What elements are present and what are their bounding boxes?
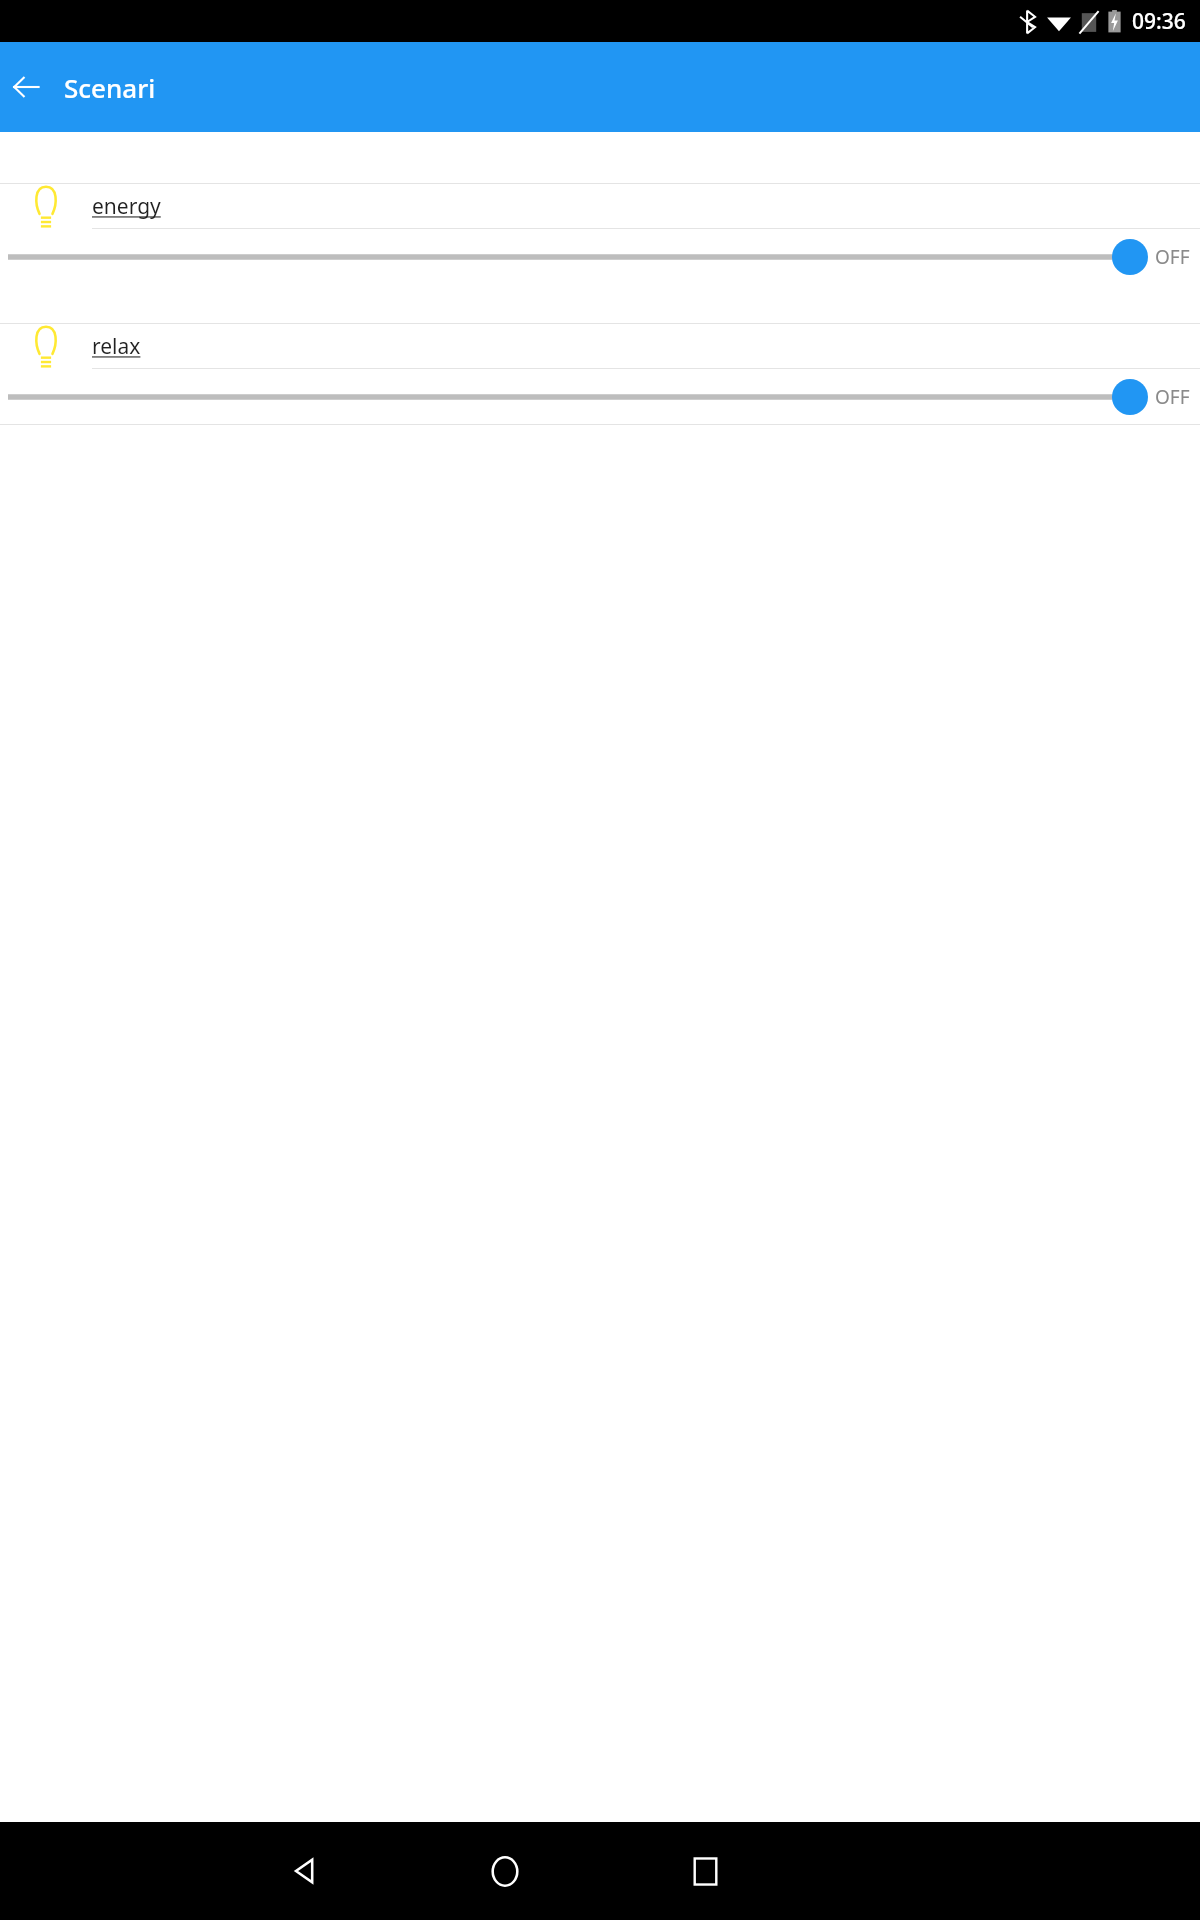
staticText: OFF <box>1155 244 1190 270</box>
staticText: energy <box>92 192 161 221</box>
button[interactable]: Back <box>255 1822 355 1920</box>
button[interactable]: energy <box>0 184 1200 284</box>
staticText: 09:36 <box>1132 7 1186 36</box>
button[interactable]: relax <box>0 324 1200 424</box>
staticText: Scenari <box>64 70 156 105</box>
staticText: relax <box>92 332 141 361</box>
button[interactable]: Scenario slider <box>8 380 1148 414</box>
button[interactable]: Recents <box>655 1822 755 1920</box>
button[interactable]: Home <box>455 1822 555 1920</box>
button[interactable]: Back <box>2 63 50 111</box>
staticText: OFF <box>1155 384 1190 410</box>
button[interactable]: Scenario slider <box>8 240 1148 274</box>
